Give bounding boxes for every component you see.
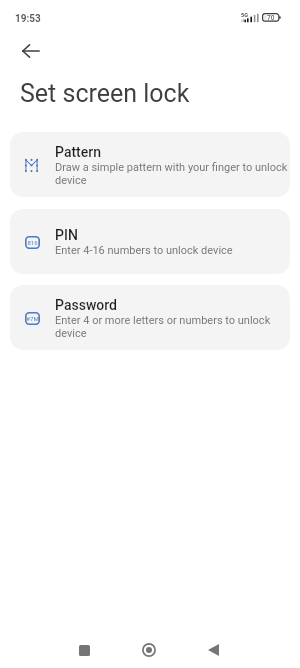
button[interactable]: #7M bbox=[10, 285, 290, 350]
staticText: 70 bbox=[267, 14, 275, 22]
staticText: 816 bbox=[27, 239, 38, 246]
button[interactable]: Back bbox=[195, 632, 231, 668]
staticText: 19:53 bbox=[15, 13, 41, 25]
staticText: Enter 4-16 numbers to unlock device bbox=[55, 244, 233, 257]
button[interactable]: Home bbox=[131, 632, 167, 668]
button[interactable]: Back bbox=[13, 33, 49, 69]
staticText: Enter 4 or more letters or numbers to un… bbox=[55, 314, 289, 339]
staticText: Pattern bbox=[55, 144, 102, 160]
staticText: Draw a simple pattern with your finger t… bbox=[55, 161, 289, 186]
button[interactable]: Pattern bbox=[10, 132, 290, 197]
staticText: Set screen lock bbox=[20, 79, 190, 108]
button[interactable]: 816 bbox=[10, 209, 290, 274]
staticText: #7M bbox=[26, 315, 39, 322]
button[interactable]: Recents bbox=[66, 632, 102, 668]
staticText: 5G bbox=[241, 12, 248, 18]
staticText: PIN bbox=[55, 227, 78, 243]
staticText: Password bbox=[55, 297, 118, 313]
